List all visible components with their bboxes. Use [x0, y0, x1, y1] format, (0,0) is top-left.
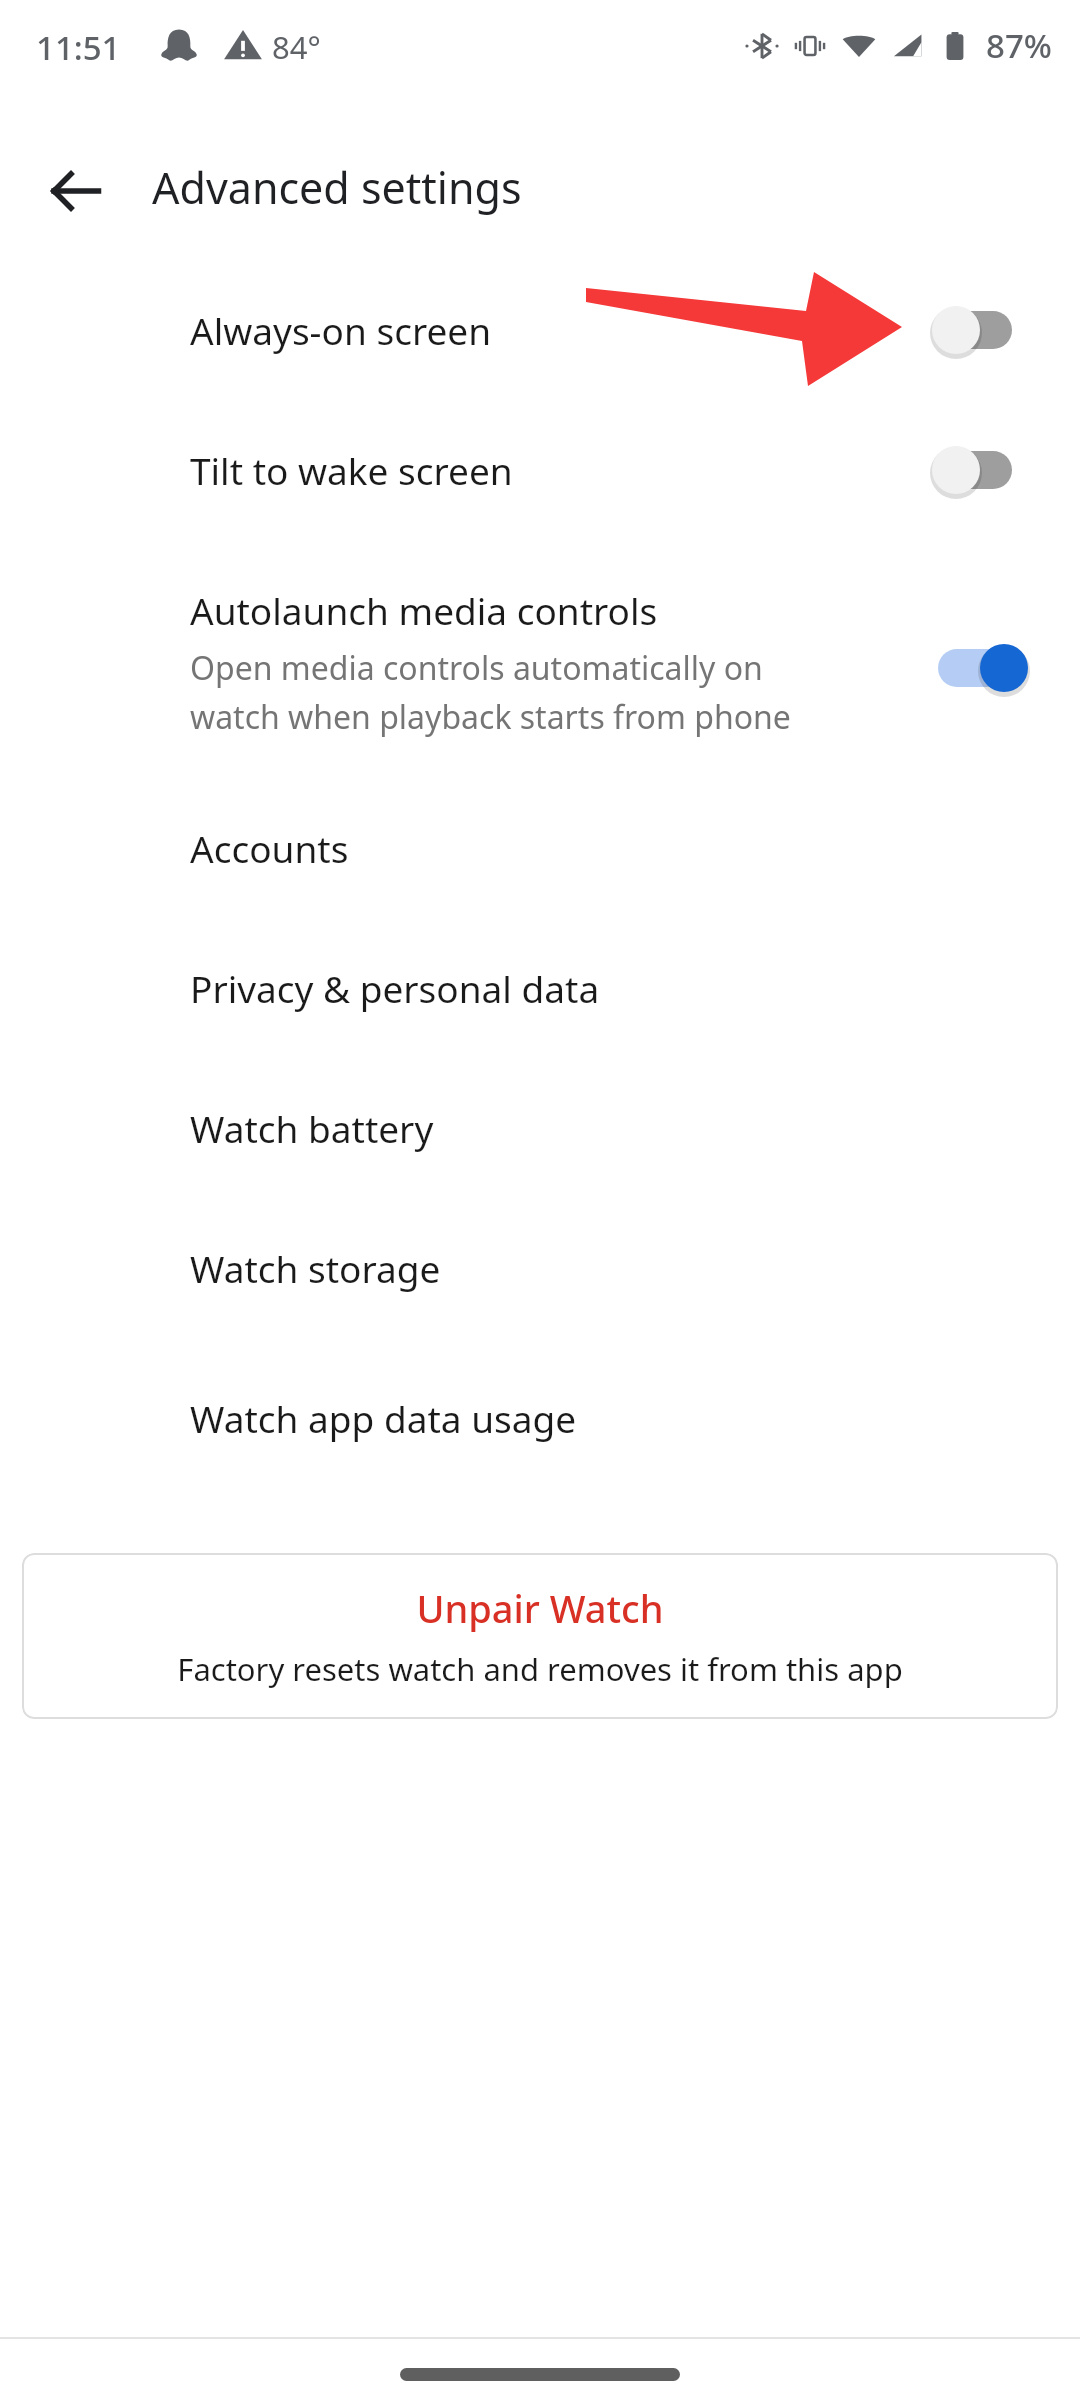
button[interactable]: Tilt to wake screen	[0, 435, 1080, 505]
button[interactable]: Accounts	[0, 813, 1080, 883]
button[interactable]: Watch app data usage	[0, 1383, 1080, 1453]
button[interactable]: Watch storage	[0, 1233, 1080, 1303]
button[interactable]: Autolaunch media controls	[0, 575, 1080, 735]
button[interactable]: Toggle off	[930, 300, 1030, 360]
staticText: 11:51	[36, 25, 121, 70]
staticText: Unpair Watch	[416, 1582, 664, 1634]
button[interactable]: Always-on screen	[0, 295, 1080, 365]
staticText: Autolaunch media controls	[190, 585, 658, 635]
button[interactable]: Unpair Watch	[22, 1553, 1058, 1719]
staticText: Accounts	[190, 823, 349, 873]
staticText: Advanced settings	[152, 158, 522, 217]
staticText: Open media controls automatically on wat…	[190, 646, 791, 738]
button[interactable]: Watch battery	[0, 1093, 1080, 1163]
staticText: 84°	[272, 26, 321, 68]
staticText: Watch battery	[190, 1103, 434, 1153]
button[interactable]: Toggle on	[930, 638, 1030, 698]
staticText: 87%	[986, 23, 1052, 68]
button[interactable]: Privacy & personal data	[0, 953, 1080, 1023]
staticText: Watch app data usage	[190, 1393, 577, 1443]
staticText: Always-on screen	[190, 305, 492, 355]
staticText: Factory resets watch and removes it from…	[177, 1648, 903, 1690]
button[interactable]: Back	[45, 160, 107, 222]
staticText: Watch storage	[190, 1243, 441, 1293]
button[interactable]: Toggle off	[930, 440, 1030, 500]
staticText: Tilt to wake screen	[190, 445, 513, 495]
staticText: Privacy & personal data	[190, 963, 600, 1013]
